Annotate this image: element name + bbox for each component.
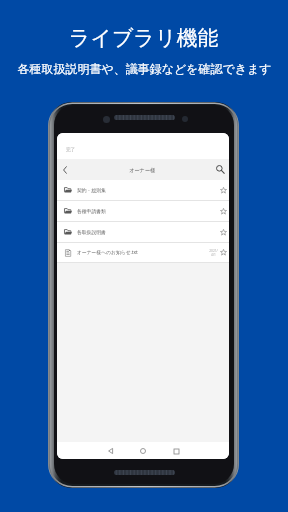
button[interactable]: Home [135, 443, 151, 459]
staticText: 各種取扱説明書や、議事録などを確認できます [17, 61, 272, 76]
staticText: 各取扱説明書 [77, 229, 106, 235]
staticText: オーナー様 [129, 167, 156, 174]
staticText: 完了 [66, 147, 76, 153]
button[interactable]: 各取扱説明書 [57, 222, 229, 242]
staticText: 各種申請書類 [77, 208, 106, 214]
staticText: 2021/ 4/1 [209, 249, 218, 257]
staticText: 契約・総則集 [77, 187, 106, 193]
button[interactable]: Back [57, 159, 73, 180]
button[interactable]: Back [102, 443, 118, 459]
button[interactable]: オーナー様へのお知らせ.txt [57, 243, 229, 262]
staticText: ライブラリ機能 [69, 25, 219, 51]
staticText: オーナー様へのお知らせ.txt [77, 249, 138, 256]
button[interactable]: 契約・総則集 [57, 180, 229, 200]
button[interactable]: 各種申請書類 [57, 201, 229, 221]
button[interactable]: Recent apps [168, 443, 184, 459]
button[interactable]: Search [211, 159, 229, 180]
